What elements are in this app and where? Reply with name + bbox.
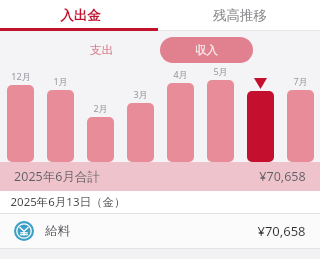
staticText: 7月 xyxy=(293,75,308,87)
staticText: 12月 xyxy=(11,70,31,82)
staticText: 2月 xyxy=(93,102,108,114)
staticText: 2025年6月合計 xyxy=(14,168,100,185)
staticText: 1月 xyxy=(53,75,68,87)
button[interactable]: 残高推移 xyxy=(160,0,320,31)
staticText: 支出 xyxy=(90,43,113,57)
staticText: ¥70,658 xyxy=(259,168,306,185)
staticText: ¥70,658 xyxy=(257,222,306,240)
staticText: 入出金 xyxy=(60,7,101,24)
staticText: 収入 xyxy=(195,43,218,57)
staticText: 4月 xyxy=(173,68,188,80)
button[interactable]: 収入 xyxy=(160,37,253,63)
button[interactable]: 支出 xyxy=(68,37,134,63)
staticText: 3月 xyxy=(133,88,148,100)
staticText: 残高推移 xyxy=(213,7,267,24)
other: 給料カテゴリ xyxy=(14,221,34,241)
button[interactable]: 給料カテゴリ xyxy=(0,214,320,248)
button[interactable]: 入出金 xyxy=(0,0,160,31)
staticText: 5月 xyxy=(213,65,228,77)
staticText: 給料 xyxy=(45,223,70,239)
staticText: 2025年6月13日（金） xyxy=(10,194,126,210)
button[interactable]: 2025年6月合計 xyxy=(0,162,320,191)
